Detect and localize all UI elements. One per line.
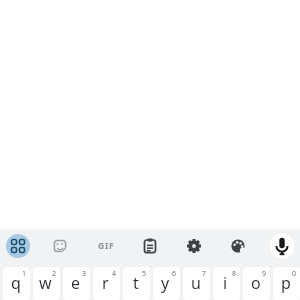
button[interactable]: t <box>123 267 150 300</box>
staticText: 6 <box>172 269 177 279</box>
staticText: 9 <box>262 269 267 279</box>
staticText: u <box>191 272 201 294</box>
staticText: r <box>102 272 109 294</box>
button[interactable] <box>1 229 35 263</box>
staticText: i <box>223 272 228 294</box>
staticText: q <box>11 272 21 294</box>
button[interactable] <box>133 229 167 263</box>
staticText: y <box>161 272 170 294</box>
button[interactable]: u <box>183 267 210 300</box>
button[interactable]: p <box>273 267 300 300</box>
button[interactable]: i <box>213 267 240 300</box>
staticText: 5 <box>142 269 147 279</box>
staticText: 4 <box>112 269 117 279</box>
staticText: w <box>39 272 52 294</box>
staticText: o <box>251 272 261 294</box>
staticText: 8 <box>232 269 237 279</box>
button[interactable]: r <box>93 267 120 300</box>
staticText: p <box>281 272 291 294</box>
staticText: 3 <box>82 269 87 279</box>
staticText: 2 <box>52 269 57 279</box>
staticText: e <box>71 272 81 294</box>
staticText: 0 <box>292 269 297 279</box>
button[interactable]: GIF <box>89 229 123 263</box>
button[interactable] <box>221 229 255 263</box>
button[interactable]: o <box>243 267 270 300</box>
button[interactable] <box>43 229 77 263</box>
button[interactable]: y <box>153 267 180 300</box>
staticText: 1 <box>22 269 27 279</box>
button[interactable]: e <box>63 267 90 300</box>
staticText: 7 <box>202 269 207 279</box>
button[interactable] <box>265 229 299 263</box>
button[interactable]: w <box>33 267 60 300</box>
staticText: GIF <box>98 240 115 252</box>
button[interactable] <box>177 229 211 263</box>
staticText: t <box>133 272 139 294</box>
button[interactable]: q <box>3 267 30 300</box>
